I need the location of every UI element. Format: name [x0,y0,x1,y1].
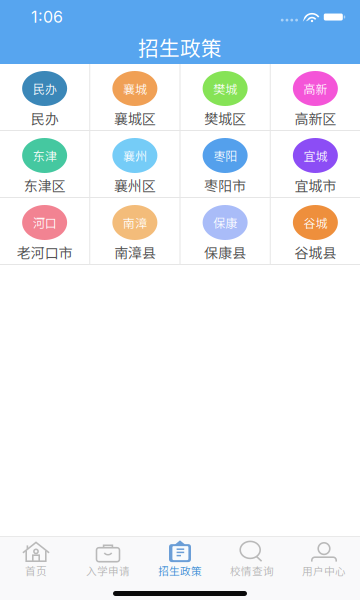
button[interactable]: 用户中心 [288,537,360,579]
staticText: 高新 [303,80,327,97]
button[interactable]: 首页 [0,537,72,579]
button[interactable]: 入学申请 [72,537,144,579]
staticText: 宜城市 [294,175,336,195]
button[interactable]: 枣阳 [180,131,270,197]
button[interactable]: 校情查询 [216,537,288,579]
staticText: 民办 [31,108,59,128]
staticText: 招生政策 [158,563,202,578]
button[interactable]: 樊城 [180,64,270,130]
staticText: 襄城 [123,80,147,97]
staticText: 保康 [213,214,237,231]
staticText: 招生政策 [138,32,222,62]
staticText: 高新区 [294,108,336,128]
button[interactable]: 招生政策 [144,537,216,579]
staticText: 保康县 [204,242,246,262]
button[interactable]: 保康 [180,198,270,264]
staticText: 宜城 [303,147,327,164]
staticText: 首页 [25,563,47,578]
staticText: 南漳县 [114,242,156,262]
staticText: 谷城 [303,214,327,231]
button[interactable]: 民办 [0,64,89,130]
staticText: 民办 [33,80,57,97]
button[interactable]: 河口 [0,198,89,264]
button[interactable]: 高新 [271,64,360,130]
staticText: 老河口市 [17,242,73,262]
staticText: 东津 [33,147,57,164]
staticText: 樊城区 [204,108,246,128]
button[interactable]: 南漳 [90,198,179,264]
staticText: 枣阳市 [204,175,246,195]
staticText: 用户中心 [302,563,346,578]
button[interactable]: 宜城 [271,131,360,197]
button[interactable]: 东津 [0,131,89,197]
staticText: 东津区 [24,175,66,195]
staticText: 襄州区 [114,175,156,195]
staticText: 南漳 [123,214,147,231]
staticText: 襄州 [123,147,147,164]
staticText: 河口 [33,214,57,231]
staticText: 枣阳 [213,147,237,164]
staticText: 谷城县 [294,242,336,262]
staticText: 樊城 [213,80,237,97]
staticText: 入学申请 [86,563,130,578]
button[interactable]: 谷城 [271,198,360,264]
button[interactable]: 襄城 [90,64,179,130]
button[interactable]: 襄州 [90,131,179,197]
staticText: 襄城区 [114,108,156,128]
staticText: 校情查询 [230,563,274,578]
staticText: 1:06 [31,7,63,27]
